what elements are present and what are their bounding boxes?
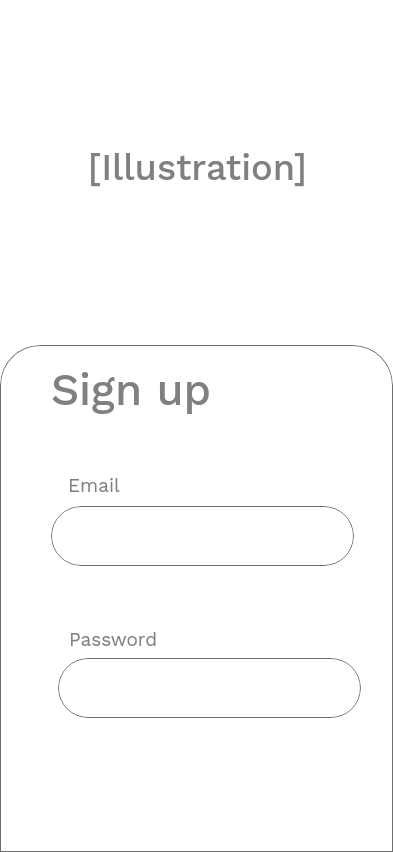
button[interactable]: Password input field [58,658,361,718]
button[interactable]: Email input field [51,506,354,566]
staticText: Sign up [51,364,212,416]
staticText: Password [69,628,158,650]
staticText: [Illustration] [1,146,393,188]
staticText: Email [68,474,120,496]
